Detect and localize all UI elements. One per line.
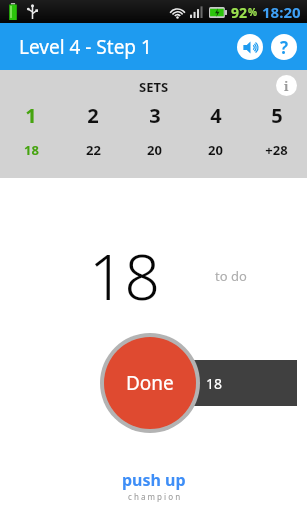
staticText: +28: [265, 141, 288, 159]
staticText: 92: [231, 3, 248, 22]
staticText: 18: [89, 234, 160, 318]
staticText: c h a m p i o n: [128, 491, 181, 502]
staticText: ?: [280, 36, 289, 59]
staticText: Level 4 - Step 1: [19, 34, 152, 60]
button[interactable]: Info: [276, 75, 297, 96]
staticText: SETS: [139, 78, 169, 96]
staticText: 4: [210, 102, 222, 129]
staticText: i: [284, 77, 289, 95]
staticText: 20: [208, 141, 223, 159]
staticText: 22: [86, 141, 101, 159]
staticText: 18:20: [262, 2, 301, 22]
staticText: %: [248, 5, 258, 19]
staticText: to do: [215, 267, 247, 285]
staticText: 5: [271, 102, 283, 129]
staticText: 18: [24, 141, 39, 159]
staticText: 1: [25, 102, 37, 129]
staticText: Done: [126, 370, 174, 396]
staticText: 3: [149, 102, 161, 129]
button[interactable]: Done: [100, 333, 200, 433]
staticText: 2: [87, 102, 99, 129]
button[interactable]: 18: [150, 360, 297, 406]
button[interactable]: Help: [271, 34, 297, 60]
button[interactable]: Sound: [237, 34, 263, 60]
staticText: 20: [147, 141, 162, 159]
staticText: push up: [122, 469, 186, 491]
staticText: 18: [206, 374, 223, 393]
